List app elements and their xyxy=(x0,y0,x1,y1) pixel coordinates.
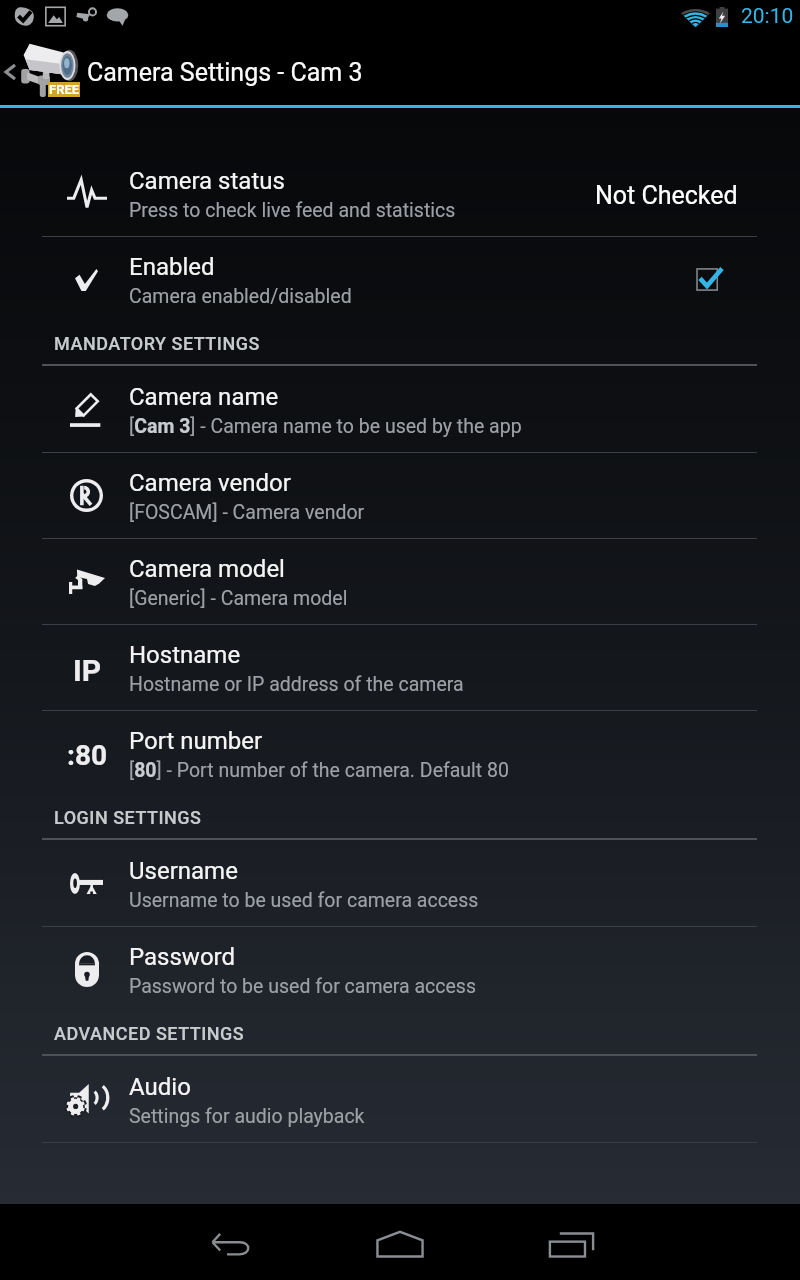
staticText: 20:10 xyxy=(741,4,794,29)
staticText: Hostname or IP address of the camera xyxy=(129,673,464,696)
staticText: [Cam 3] - Camera name to be used by the … xyxy=(129,415,522,438)
staticText: Camera status xyxy=(129,167,285,195)
button[interactable]: Back xyxy=(186,1206,274,1280)
button[interactable]: :80 xyxy=(0,711,800,797)
staticText: Audio xyxy=(129,1073,191,1101)
other: Navigate up xyxy=(6,65,15,79)
staticText: [80] - Port number of the camera. Defaul… xyxy=(129,759,509,782)
staticText: Camera vendor xyxy=(129,469,291,497)
staticText: Hostname xyxy=(129,641,241,669)
staticText: Password xyxy=(129,943,236,971)
staticText: Camera enabled/disabled xyxy=(129,285,352,308)
staticText: Settings for audio playback xyxy=(129,1105,365,1128)
staticText: [Generic] - Camera model xyxy=(129,587,348,610)
button[interactable]: Password xyxy=(0,927,800,1013)
staticText: :80 xyxy=(67,739,108,769)
staticText: Not Checked xyxy=(595,181,738,210)
staticText: Username to be used for camera access xyxy=(129,889,479,912)
staticText: Camera model xyxy=(129,555,285,583)
button[interactable]: Username xyxy=(0,841,800,927)
staticText: Username xyxy=(129,857,238,885)
staticText: Press to check live feed and statistics xyxy=(129,199,456,222)
button[interactable]: Recent apps xyxy=(527,1207,615,1280)
button[interactable]: Home xyxy=(356,1206,444,1280)
button[interactable]: Audio xyxy=(0,1057,800,1143)
button[interactable]: Camera model xyxy=(0,539,800,625)
staticText: IP xyxy=(73,653,102,683)
button[interactable]: Camera name xyxy=(0,367,800,453)
button[interactable]: IP xyxy=(0,625,800,711)
button[interactable]: Camera vendor xyxy=(0,453,800,539)
staticText: Enabled xyxy=(129,253,215,281)
staticText: [FOSCAM] - Camera vendor xyxy=(129,501,365,524)
button[interactable]: Enabled xyxy=(0,237,800,323)
staticText: Camera name xyxy=(129,383,279,411)
staticText: LOGIN SETTINGS xyxy=(54,807,202,828)
button[interactable]: Navigate up xyxy=(0,32,800,105)
staticText: FREE xyxy=(49,82,80,97)
staticText: Port number xyxy=(129,727,263,755)
staticText: MANDATORY SETTINGS xyxy=(54,333,260,354)
staticText: ADVANCED SETTINGS xyxy=(54,1023,245,1044)
button[interactable]: Camera status xyxy=(0,151,800,237)
staticText: Camera Settings - Cam 3 xyxy=(87,58,363,87)
staticText: Password to be used for camera access xyxy=(129,975,476,998)
